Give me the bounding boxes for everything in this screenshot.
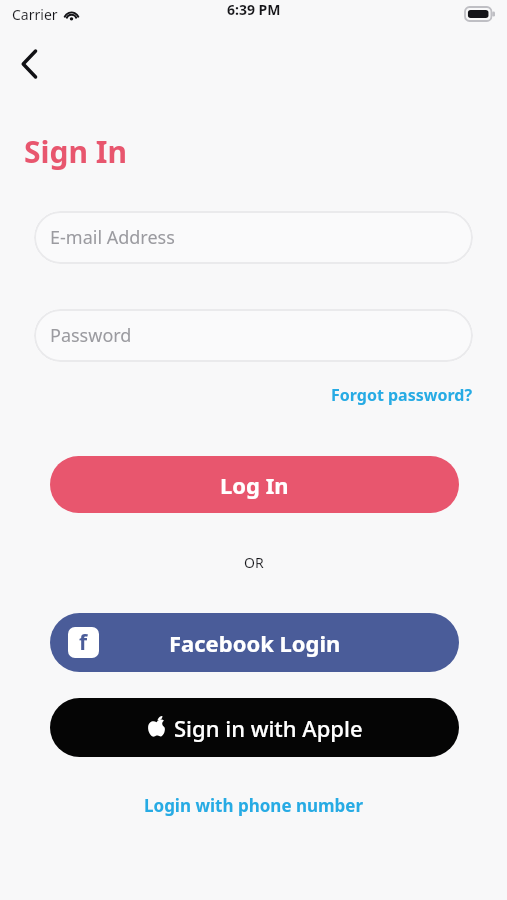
button[interactable]: Sign in with Apple	[50, 698, 459, 757]
button[interactable]: Log In	[50, 456, 459, 513]
staticText: Log In	[220, 470, 289, 500]
button[interactable]: Password	[34, 309, 473, 362]
staticText: Login with phone number	[144, 794, 364, 817]
staticText: f	[79, 628, 88, 657]
staticText: Sign In	[24, 131, 127, 172]
staticText: Carrier	[12, 5, 58, 24]
staticText: Facebook Login	[169, 628, 341, 658]
staticText: Password	[50, 323, 132, 348]
button[interactable]: E-mail Address	[34, 211, 473, 264]
button[interactable]: Back	[6, 40, 54, 88]
staticText: OR	[244, 553, 264, 572]
button[interactable]: Login with phone number	[138, 790, 370, 821]
button[interactable]: f	[50, 613, 459, 672]
staticText: Sign in with Apple	[174, 713, 363, 743]
staticText: 6:39 PM	[227, 0, 281, 19]
button[interactable]: Forgot password?	[327, 381, 477, 409]
staticText: E-mail Address	[50, 225, 175, 250]
staticText: Forgot password?	[331, 384, 473, 406]
